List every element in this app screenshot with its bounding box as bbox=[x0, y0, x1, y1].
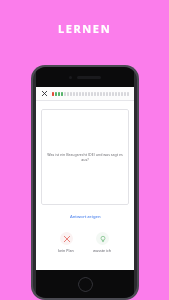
button[interactable]: Was ist ein Bezugsrecht (DE) und was sag… bbox=[41, 109, 129, 205]
button[interactable]: wusste ich bbox=[91, 230, 114, 255]
staticText: LERNEN bbox=[58, 21, 112, 36]
staticText: wusste ich bbox=[93, 248, 112, 253]
staticText: Was ist ein Bezugsrecht (DE) und was sag… bbox=[47, 152, 123, 162]
staticText: Antwort zeigen bbox=[70, 214, 101, 220]
button[interactable]: Antwort zeigen bbox=[41, 214, 129, 220]
button[interactable]: Home bbox=[78, 277, 93, 292]
button[interactable]: kein Plan bbox=[56, 230, 76, 255]
button[interactable]: Schließen bbox=[40, 89, 49, 98]
staticText: kein Plan bbox=[58, 248, 74, 253]
